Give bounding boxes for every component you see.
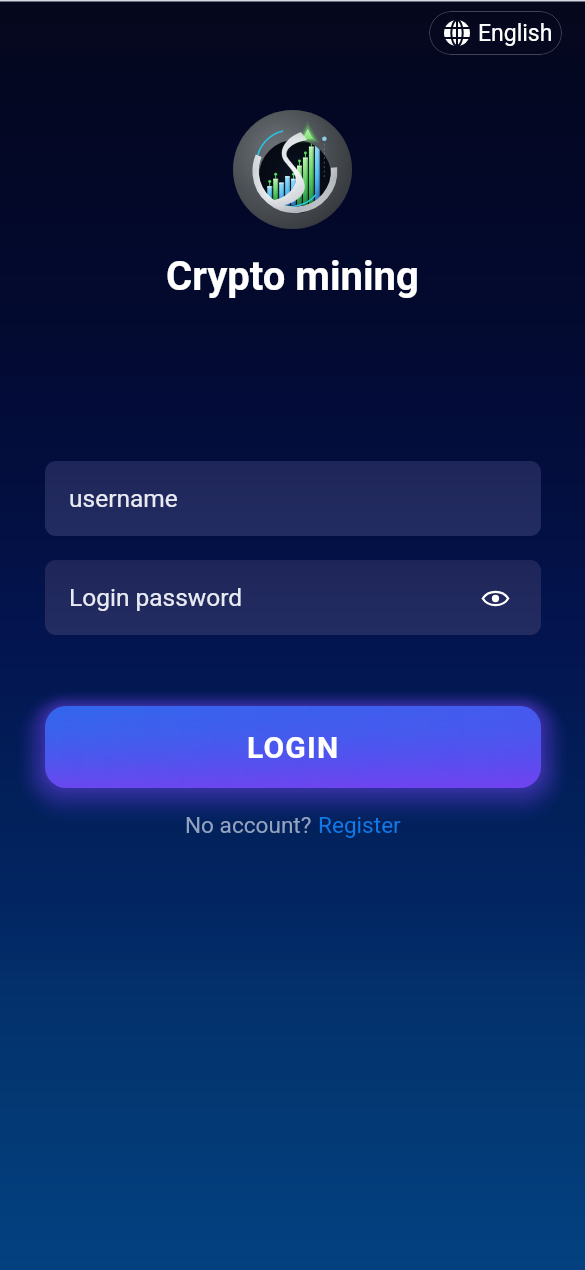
staticText: Crypto mining xyxy=(166,253,419,300)
staticText: username xyxy=(69,484,178,513)
staticText: English xyxy=(478,20,553,47)
button[interactable]: Register xyxy=(318,812,401,838)
staticText: Login password xyxy=(69,583,243,612)
button[interactable]: English xyxy=(429,11,562,55)
staticText: LOGIN xyxy=(247,730,340,765)
staticText: No account? xyxy=(185,812,318,838)
button[interactable]: Login password xyxy=(45,560,541,635)
staticText: Register xyxy=(318,812,401,838)
button[interactable]: LOGIN xyxy=(45,706,541,788)
button[interactable]: username xyxy=(45,461,541,536)
button[interactable]: Show password xyxy=(473,576,517,620)
